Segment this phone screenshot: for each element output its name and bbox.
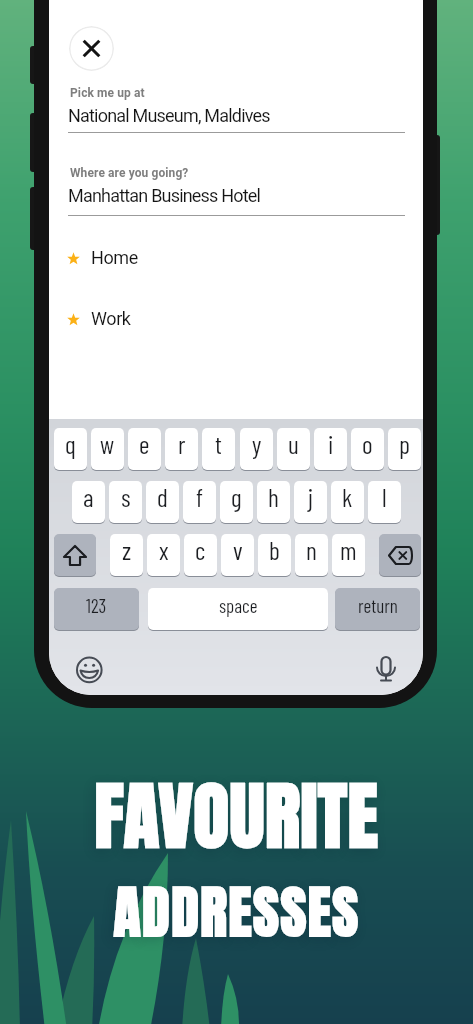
button[interactable]: b	[258, 534, 291, 576]
button[interactable]: m	[332, 534, 365, 576]
staticText: 123	[86, 594, 107, 617]
staticText: ADDRESSES	[0, 870, 473, 954]
staticText: k	[342, 481, 353, 512]
staticText: h	[268, 481, 279, 512]
button[interactable]: q	[54, 428, 87, 470]
staticText: e	[139, 428, 150, 459]
staticText: Where are you going?	[70, 166, 189, 180]
staticText: i	[328, 428, 334, 459]
button[interactable]: d	[146, 481, 179, 523]
staticText: m	[340, 534, 357, 565]
staticText: y	[252, 428, 262, 459]
button[interactable]: a	[72, 481, 105, 523]
staticText: w	[100, 428, 115, 459]
staticText: z	[122, 534, 132, 565]
button[interactable]: r	[165, 428, 198, 470]
button[interactable]: p	[388, 428, 421, 470]
staticText: return	[358, 594, 398, 617]
staticText: x	[159, 534, 169, 565]
staticText: s	[121, 481, 131, 512]
button[interactable]: x	[147, 534, 180, 576]
button[interactable]: f	[183, 481, 216, 523]
button[interactable]: k	[331, 481, 364, 523]
staticText: v	[233, 534, 243, 565]
button[interactable]: l	[368, 481, 401, 523]
staticText: l	[382, 481, 387, 512]
button[interactable]: u	[277, 428, 310, 470]
staticText: Home	[91, 247, 138, 268]
staticText: Work	[91, 308, 131, 329]
button[interactable]: t	[202, 428, 235, 470]
button[interactable]: j	[294, 481, 327, 523]
staticText: space	[219, 594, 258, 617]
staticText: g	[231, 481, 242, 512]
staticText: Manhattan Business Hotel	[68, 185, 261, 206]
button[interactable]: e	[128, 428, 161, 470]
staticText: n	[306, 534, 317, 565]
staticText: j	[308, 481, 314, 512]
button[interactable]: v	[221, 534, 254, 576]
staticText: FAVOURITE	[0, 761, 473, 871]
button[interactable]	[379, 534, 421, 576]
staticText: p	[399, 428, 410, 459]
button[interactable]: w	[91, 428, 124, 470]
button[interactable]: g	[220, 481, 253, 523]
button[interactable]: c	[184, 534, 217, 576]
button[interactable]	[54, 534, 96, 576]
button[interactable]: return	[335, 588, 420, 630]
staticText: c	[195, 534, 206, 565]
staticText: d	[157, 481, 168, 512]
staticText: b	[269, 534, 280, 565]
staticText: u	[288, 428, 299, 459]
button[interactable]: o	[351, 428, 384, 470]
button[interactable]: y	[240, 428, 273, 470]
staticText: f	[196, 481, 204, 512]
staticText: Pick me up at	[70, 86, 145, 100]
button[interactable]: Work	[66, 301, 405, 339]
button[interactable]: space	[148, 588, 328, 630]
staticText: q	[65, 428, 76, 459]
button[interactable]: 123	[54, 588, 139, 630]
button[interactable]: s	[109, 481, 142, 523]
button[interactable]: Pick me up at	[68, 86, 405, 134]
button[interactable]: Home	[66, 240, 405, 278]
button[interactable]: i	[314, 428, 347, 470]
staticText: t	[215, 428, 222, 459]
button[interactable]: Where are you going?	[68, 166, 405, 214]
staticText: National Museum, Maldives	[68, 105, 270, 126]
button[interactable]: n	[295, 534, 328, 576]
staticText: r	[178, 428, 186, 459]
button[interactable]: h	[257, 481, 290, 523]
staticText: a	[83, 481, 94, 512]
button[interactable]	[69, 26, 114, 71]
button[interactable]: z	[110, 534, 143, 576]
staticText: o	[362, 428, 373, 459]
